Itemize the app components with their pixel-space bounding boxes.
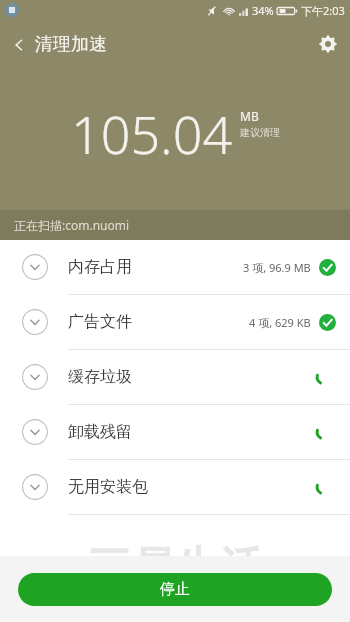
button[interactable]: Expand 内存占用 <box>0 240 350 294</box>
staticText: 3 项, 96.9 MB <box>243 260 311 275</box>
staticText: 正在扫描:com.nuomi <box>14 217 130 233</box>
staticText: 105.04 <box>71 98 233 169</box>
staticText: 清理加速 <box>35 33 107 56</box>
staticText: 34% <box>252 3 274 18</box>
button[interactable]: 停止 <box>18 573 332 606</box>
staticText: 建议清理 <box>240 126 280 139</box>
other: Back <box>12 38 26 52</box>
button[interactable]: Settings <box>306 22 350 66</box>
other: Expand 卸载残留 <box>22 419 48 445</box>
button[interactable]: Expand 缓存垃圾 <box>0 350 350 404</box>
button[interactable]: Expand 卸载残留 <box>0 405 350 459</box>
staticText: 三易生活 <box>87 541 263 596</box>
staticText: 无用安装包 <box>68 477 148 497</box>
staticText: 卸载残留 <box>68 422 132 442</box>
button[interactable]: Expand 广告文件 <box>0 295 350 349</box>
staticText: 4 项, 629 KB <box>249 315 311 330</box>
staticText: 停止 <box>160 580 190 599</box>
other: Expand 广告文件 <box>22 309 48 335</box>
staticText: 缓存垃圾 <box>68 367 132 387</box>
button[interactable]: Back <box>0 25 119 64</box>
staticText: MB <box>240 108 259 124</box>
button[interactable]: Expand 无用安装包 <box>0 460 350 514</box>
staticText: 广告文件 <box>68 312 132 332</box>
staticText: 内存占用 <box>68 257 132 277</box>
staticText: www.3elife.net <box>92 588 258 618</box>
other: Expand 缓存垃圾 <box>22 364 48 390</box>
other: Expand 内存占用 <box>22 254 48 280</box>
staticText: 下午2:03 <box>301 3 345 18</box>
other: Expand 无用安装包 <box>22 474 48 500</box>
